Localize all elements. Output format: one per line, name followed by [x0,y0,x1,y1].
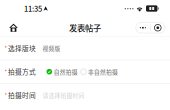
button[interactable]: * [0,84,170,107]
button[interactable]: 首页 [7,21,20,34]
staticText: 选择版块 [8,43,36,53]
staticText: 发表帖子 [69,22,101,34]
button[interactable]: 关闭 [151,22,165,33]
staticText: * [4,91,7,99]
staticText: 非自然拍摄 [88,67,118,76]
staticText: * [4,44,7,52]
staticText: 拍摄方式 [8,67,36,77]
button[interactable]: * [0,37,170,60]
staticText: 拍摄时间 [8,90,36,100]
button[interactable]: 更多 [136,22,150,33]
staticText: * [4,68,7,76]
staticText: 请选择拍摄时间 [42,91,84,99]
button[interactable]: 非自然拍摄 [81,67,118,76]
staticText: 11:35 [24,3,42,14]
staticText: 自然拍摄 [54,67,78,76]
staticText: 视频版 [42,44,60,52]
button[interactable]: 自然拍摄 [46,67,78,76]
